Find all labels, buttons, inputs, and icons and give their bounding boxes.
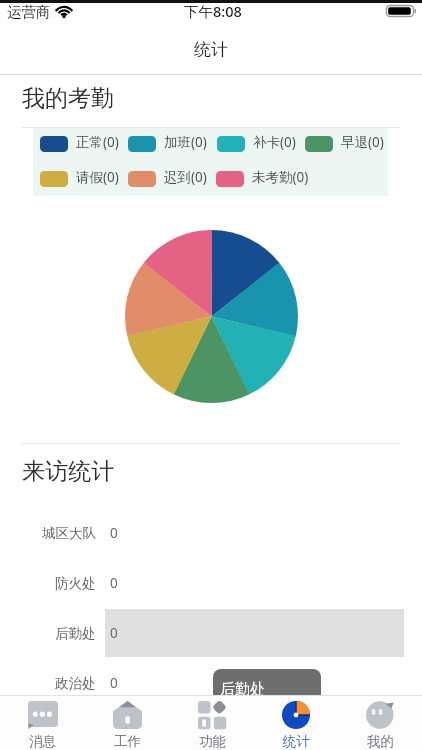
button[interactable]: 统计: [254, 696, 338, 750]
staticText: 请假(0): [76, 168, 119, 186]
staticText: 功能: [199, 733, 226, 750]
button[interactable]: 功能: [170, 696, 254, 750]
staticText: 消息: [29, 733, 56, 750]
button[interactable]: 我的: [338, 696, 422, 750]
staticText: 政治处: [55, 675, 96, 692]
button[interactable]: 请假(0): [40, 168, 119, 186]
button[interactable]: 补卡(0): [217, 133, 296, 151]
other: 统计: [282, 701, 310, 729]
staticText: 迟到(0): [164, 168, 207, 186]
button[interactable]: 消息: [0, 696, 85, 750]
staticText: 0: [110, 524, 118, 542]
staticText: 补卡(0): [253, 133, 296, 151]
staticText: 后勤处: [55, 625, 96, 642]
staticText: 我的: [367, 733, 394, 750]
button[interactable]: 城区大队: [0, 508, 422, 558]
button[interactable]: 早退(0): [305, 133, 384, 151]
staticText: 我的考勤: [22, 84, 114, 113]
staticText: 城区大队: [42, 525, 96, 542]
staticText: 下午8:08: [184, 1, 242, 21]
button[interactable]: 防火处: [0, 558, 422, 608]
staticText: 后勤处: [220, 680, 265, 699]
staticText: 工作: [114, 733, 141, 750]
staticText: 0: [110, 624, 118, 642]
staticText: 0: [110, 674, 118, 692]
button[interactable]: 后勤处: [0, 608, 422, 658]
button[interactable]: 迟到(0): [128, 168, 207, 186]
staticText: 0: [110, 574, 118, 592]
staticText: 正常(0): [76, 133, 119, 151]
staticText: 加班(0): [164, 133, 207, 151]
staticText: 来访统计: [22, 457, 114, 486]
button[interactable]: 正常(0): [40, 133, 119, 151]
button[interactable]: 工作: [85, 696, 170, 750]
staticText: 统计: [194, 39, 228, 60]
staticText: 运营商: [7, 3, 51, 21]
button[interactable]: 未考勤(0): [216, 168, 309, 186]
staticText: 未考勤(0): [252, 168, 309, 186]
button[interactable]: 政治处: [0, 658, 422, 708]
staticText: 防火处: [55, 575, 96, 592]
staticText: 统计: [283, 733, 310, 750]
staticText: 早退(0): [341, 133, 384, 151]
button[interactable]: 加班(0): [128, 133, 207, 151]
